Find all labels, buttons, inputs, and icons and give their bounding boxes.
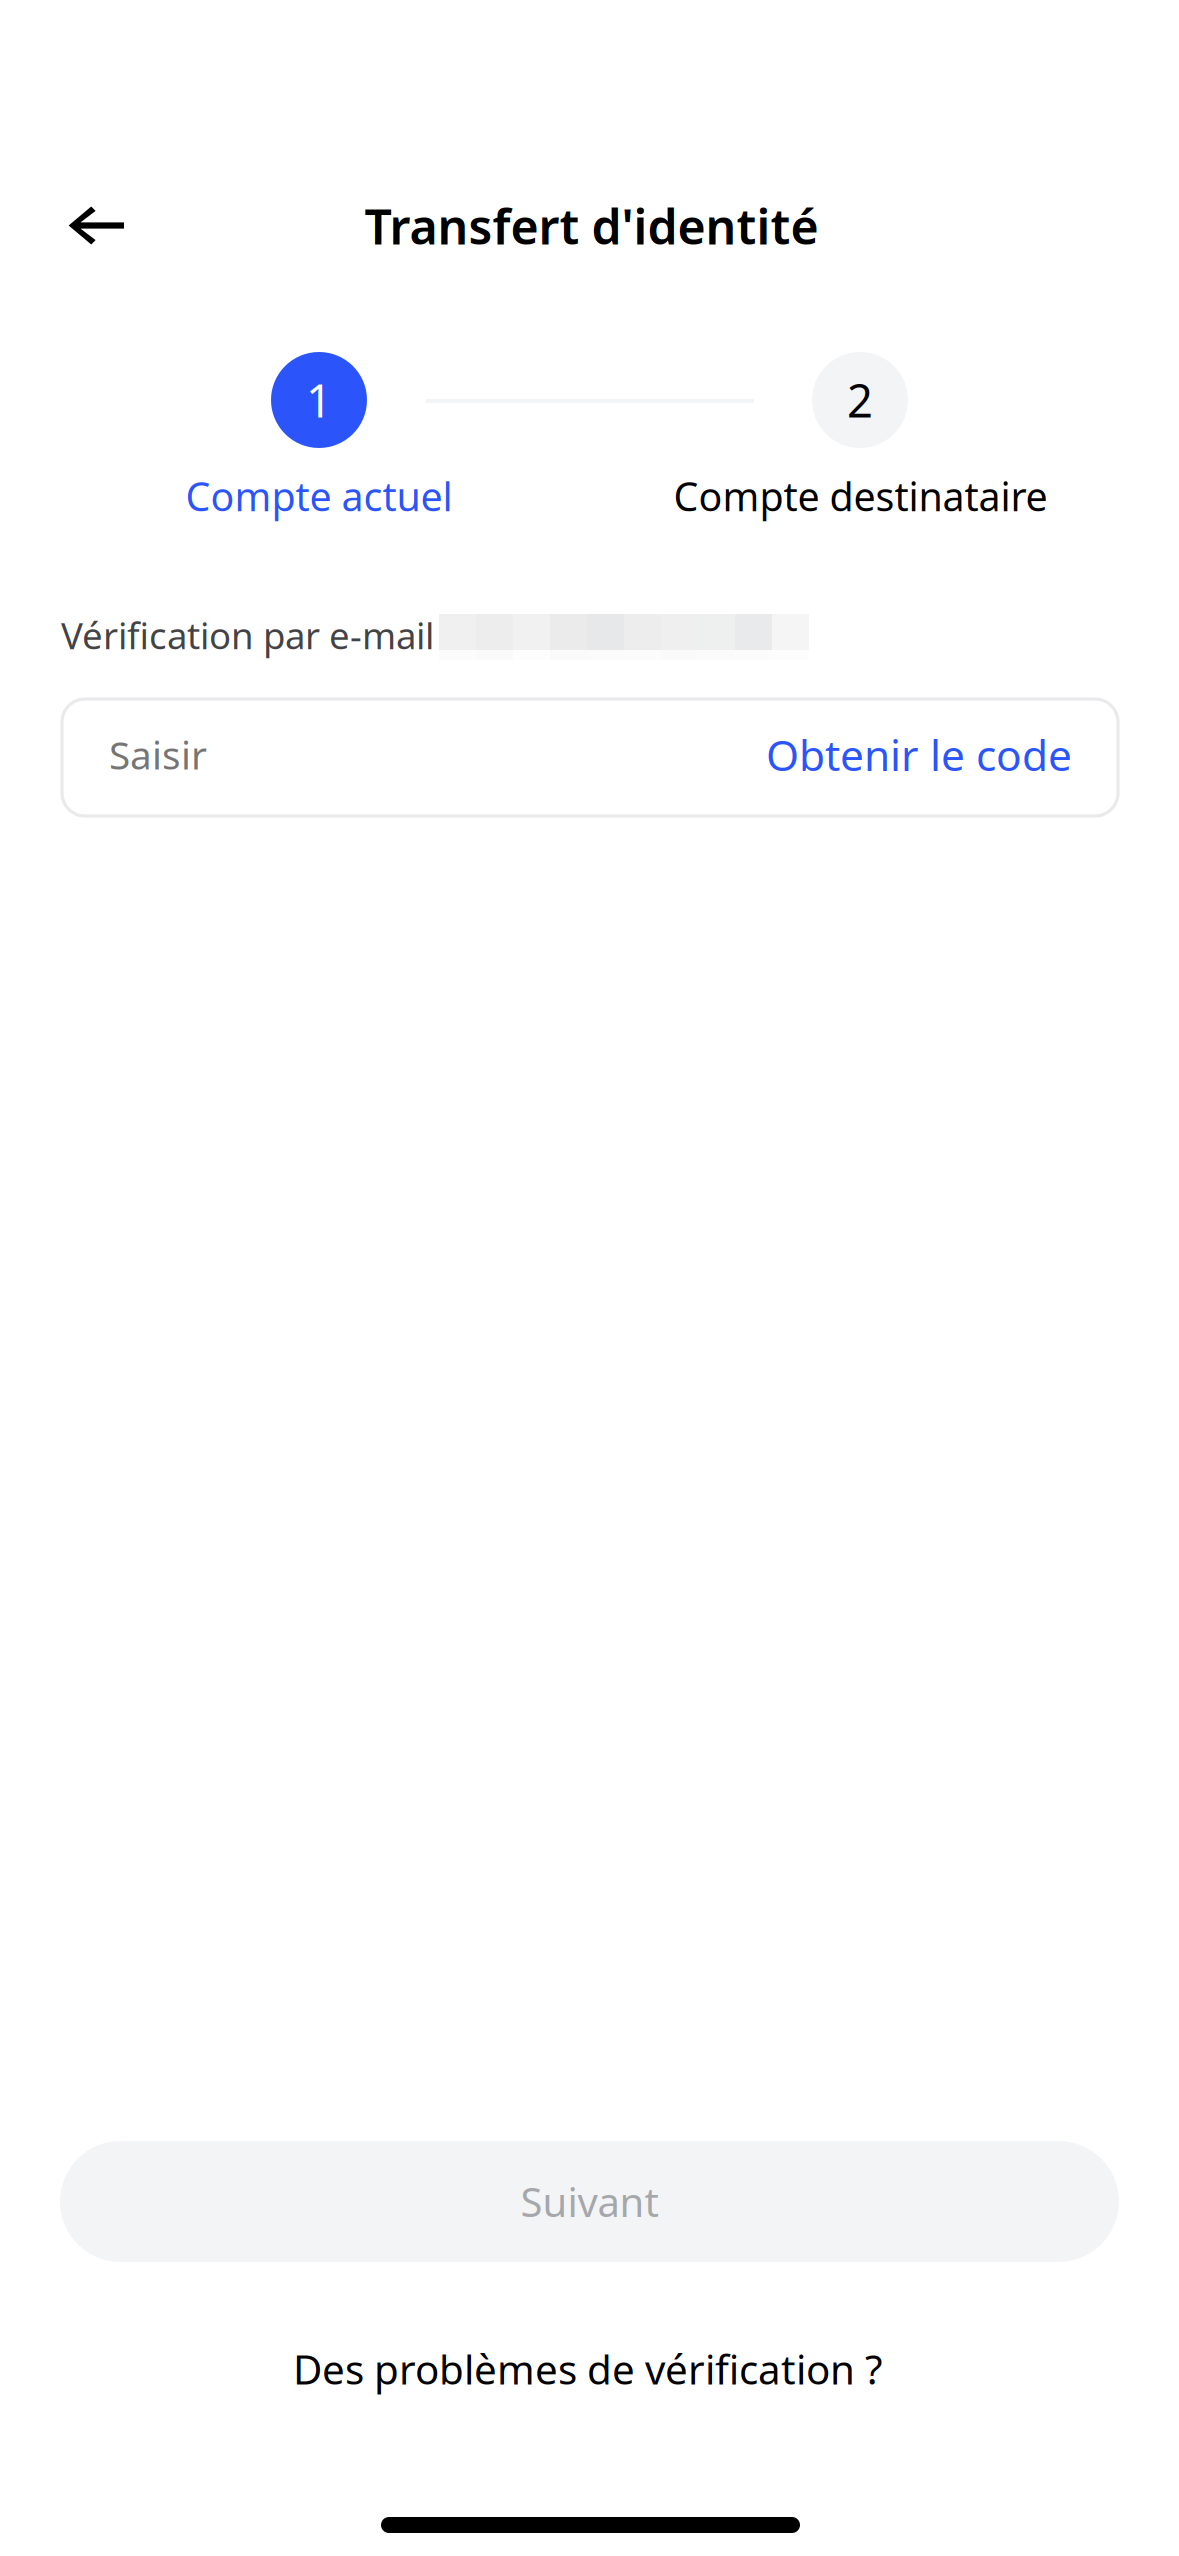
staticText: Obtenir le code [766,726,1072,783]
staticText: Compte destinataire [673,469,1047,523]
staticText: Compte actuel [185,469,452,523]
staticText: 2 [847,369,873,431]
staticText: Vérification par e-mail [61,610,434,660]
button[interactable]: Obtenir le code [766,726,1072,783]
button[interactable]: Back [46,176,156,276]
button[interactable]: Suivant [60,2141,1119,2262]
staticText: Transfert d'identité [364,193,818,259]
staticText: Des problèmes de vérification ? [293,2342,882,2396]
staticText: Suivant [520,2174,658,2229]
button[interactable]: Des problèmes de vérification ? [0,2341,1177,2397]
staticText: Saisir [109,728,207,781]
staticText: 1 [306,369,332,431]
